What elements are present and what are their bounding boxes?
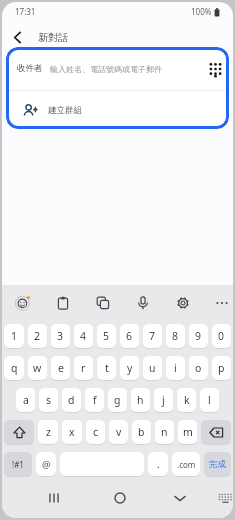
- staticText: 3: [57, 329, 64, 343]
- button[interactable]: k: [177, 388, 196, 412]
- staticText: 收件者: [17, 63, 43, 74]
- button[interactable]: [2, 28, 32, 47]
- button[interactable]: [39, 483, 69, 513]
- button[interactable]: [212, 485, 233, 511]
- button[interactable]: n: [155, 420, 174, 444]
- button[interactable]: [201, 420, 231, 444]
- button[interactable]: 6: [120, 324, 139, 348]
- button[interactable]: 0: [212, 324, 231, 348]
- button[interactable]: !#1: [4, 452, 32, 476]
- button[interactable]: z: [38, 420, 58, 444]
- button[interactable]: p: [212, 356, 231, 380]
- button[interactable]: d: [62, 388, 81, 412]
- staticText: 新對話: [38, 31, 68, 44]
- button[interactable]: t: [97, 356, 116, 380]
- staticText: c: [93, 425, 99, 439]
- staticText: 6: [126, 329, 133, 343]
- button[interactable]: 2: [28, 324, 47, 348]
- staticText: 建立群組: [48, 105, 82, 116]
- button[interactable]: e: [51, 356, 70, 380]
- button[interactable]: a: [16, 388, 35, 412]
- button[interactable]: 收件者: [6, 47, 229, 90]
- staticText: 輸入姓名、電話號碼或電子郵件: [50, 64, 162, 74]
- button[interactable]: w: [28, 356, 47, 380]
- staticText: i: [174, 361, 177, 375]
- button[interactable]: o: [189, 356, 208, 380]
- staticText: 1: [11, 329, 18, 343]
- staticText: k: [184, 393, 190, 407]
- button[interactable]: 完成: [204, 452, 231, 476]
- staticText: h: [137, 393, 144, 407]
- staticText: 完成: [209, 459, 226, 470]
- button[interactable]: [170, 290, 196, 316]
- staticText: 9: [195, 329, 202, 343]
- button[interactable]: @: [36, 452, 56, 476]
- button[interactable]: i: [166, 356, 185, 380]
- button[interactable]: [105, 483, 135, 513]
- button[interactable]: 1: [4, 324, 24, 348]
- staticText: .: [157, 457, 160, 471]
- button[interactable]: .com: [172, 452, 200, 476]
- button[interactable]: [165, 483, 195, 513]
- button[interactable]: q: [4, 356, 24, 380]
- button[interactable]: 3: [51, 324, 70, 348]
- button[interactable]: y: [120, 356, 139, 380]
- staticText: w: [33, 361, 42, 375]
- staticText: y: [127, 361, 133, 375]
- button[interactable]: u: [143, 356, 162, 380]
- staticText: @: [42, 458, 51, 471]
- button[interactable]: h: [131, 388, 150, 412]
- button[interactable]: g: [108, 388, 127, 412]
- staticText: b: [138, 425, 145, 439]
- staticText: 4: [80, 329, 87, 343]
- staticText: m: [183, 425, 193, 439]
- staticText: 100%: [191, 6, 212, 17]
- staticText: d: [68, 393, 75, 407]
- button[interactable]: l: [200, 388, 219, 412]
- button[interactable]: j: [154, 388, 173, 412]
- staticText: g: [114, 393, 121, 407]
- button[interactable]: 9: [189, 324, 208, 348]
- button[interactable]: [10, 290, 36, 316]
- button[interactable]: r: [74, 356, 93, 380]
- button[interactable]: 建立群組: [6, 91, 229, 129]
- button[interactable]: 8: [166, 324, 185, 348]
- button[interactable]: [50, 290, 76, 316]
- staticText: n: [161, 425, 168, 439]
- button[interactable]: c: [86, 420, 105, 444]
- button[interactable]: f: [85, 388, 104, 412]
- staticText: 8: [172, 329, 179, 343]
- button[interactable]: [90, 290, 116, 316]
- staticText: 17:31: [15, 6, 36, 17]
- staticText: 5: [103, 329, 110, 343]
- staticText: r: [81, 361, 86, 375]
- staticText: u: [149, 361, 156, 375]
- button[interactable]: 4: [74, 324, 93, 348]
- staticText: v: [116, 425, 122, 439]
- staticText: a: [23, 393, 29, 407]
- staticText: .com: [177, 459, 196, 470]
- button[interactable]: [4, 420, 34, 444]
- staticText: t: [105, 361, 109, 375]
- staticText: j: [162, 393, 165, 407]
- button[interactable]: .: [148, 452, 168, 476]
- staticText: l: [208, 393, 211, 407]
- staticText: z: [46, 425, 51, 439]
- staticText: s: [46, 393, 52, 407]
- button[interactable]: 7: [143, 324, 162, 348]
- button[interactable]: 5: [97, 324, 116, 348]
- staticText: p: [218, 361, 225, 375]
- staticText: 7: [149, 329, 156, 343]
- button[interactable]: v: [109, 420, 128, 444]
- button[interactable]: s: [39, 388, 58, 412]
- button[interactable]: [210, 290, 233, 316]
- staticText: 0: [218, 329, 225, 343]
- button[interactable]: [130, 290, 156, 316]
- button[interactable]: x: [62, 420, 82, 444]
- staticText: o: [195, 361, 202, 375]
- button[interactable]: m: [178, 420, 197, 444]
- staticText: e: [58, 361, 64, 375]
- staticText: x: [69, 425, 75, 439]
- button[interactable]: b: [132, 420, 151, 444]
